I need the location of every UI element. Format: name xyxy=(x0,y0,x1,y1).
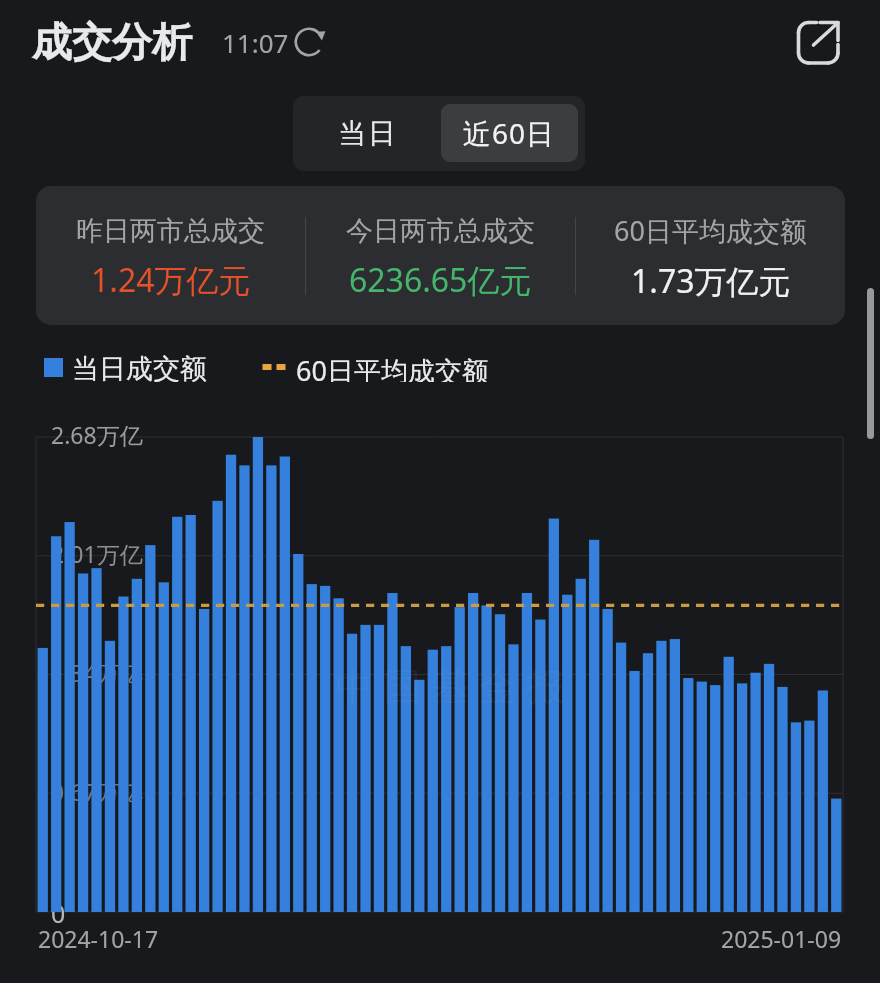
button[interactable]: 近60日 xyxy=(441,104,578,162)
staticText: 中国基金报 xyxy=(330,663,570,711)
button[interactable]: Refresh xyxy=(293,26,325,58)
staticText: 近60日 xyxy=(463,114,556,152)
staticText: 60日平均成交额 xyxy=(296,352,489,382)
staticText: 2.01万亿 xyxy=(51,538,143,569)
staticText: 11:07 xyxy=(222,25,289,60)
staticText: 1.73万亿元 xyxy=(631,259,791,303)
button[interactable]: 昨日两市总成交 xyxy=(36,210,305,302)
staticText: 2025-01-09 xyxy=(721,923,842,954)
button[interactable]: 今日两市总成交 xyxy=(306,210,575,302)
staticText: 2.68万亿 xyxy=(51,419,143,450)
staticText: 1.24万亿元 xyxy=(91,258,251,302)
staticText: 6236.65亿元 xyxy=(349,258,532,302)
button[interactable]: 当日 xyxy=(293,96,441,171)
staticText: 0 xyxy=(51,896,66,930)
staticText: 2024-10-17 xyxy=(38,923,159,954)
staticText: 当日成交额 xyxy=(72,352,207,382)
staticText: 1.34万亿 xyxy=(51,657,143,688)
button[interactable]: Open in new window xyxy=(790,14,846,70)
staticText: 今日两市总成交 xyxy=(346,214,535,248)
staticText: 当日 xyxy=(337,116,397,151)
staticText: 昨日两市总成交 xyxy=(76,214,265,248)
staticText: 成交分析 xyxy=(32,17,192,67)
staticText: 0.67万亿 xyxy=(51,776,143,807)
button[interactable]: 60日平均成交额 xyxy=(576,208,845,303)
staticText: 60日平均成交额 xyxy=(614,212,807,249)
